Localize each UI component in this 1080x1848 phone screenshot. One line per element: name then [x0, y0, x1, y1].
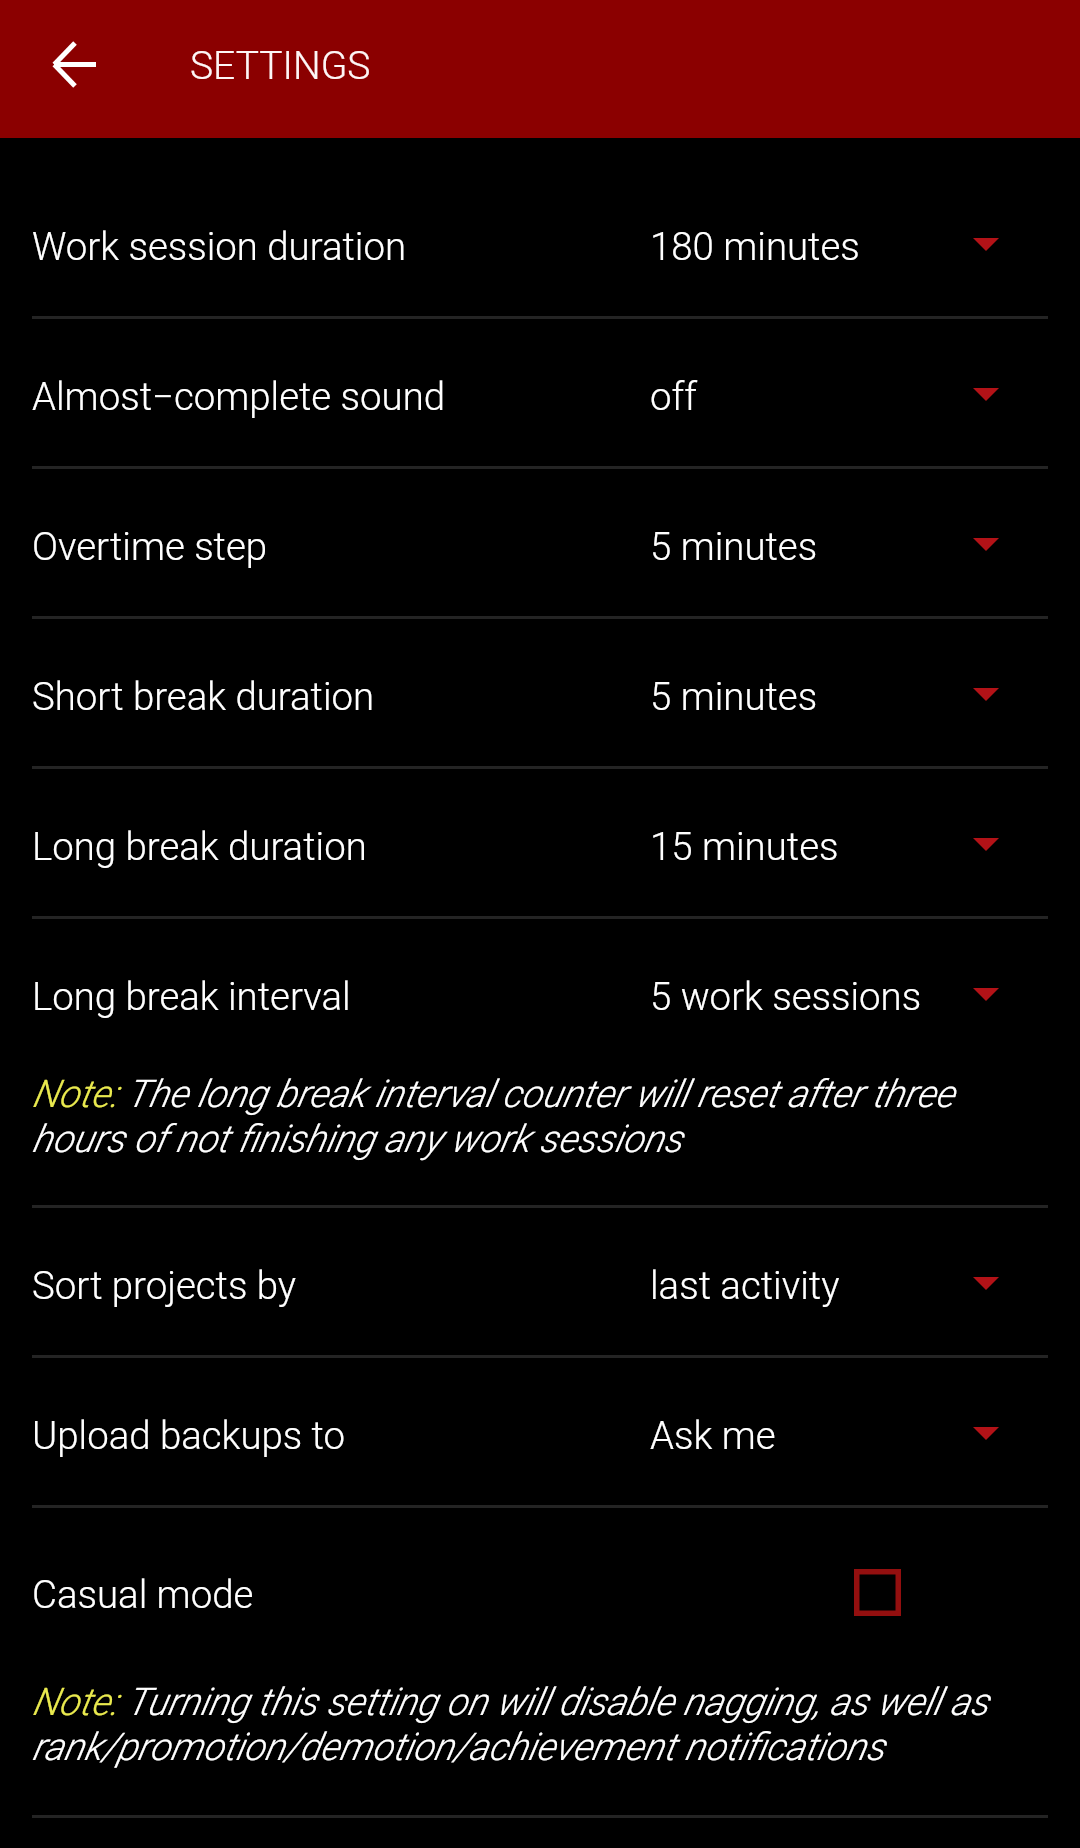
staticText: Note: The long break interval counter wi… — [32, 1072, 1048, 1161]
button[interactable]: Back — [6, 0, 144, 138]
staticText: off — [650, 374, 697, 419]
staticText: 180 minutes — [650, 224, 860, 269]
staticText: 5 minutes — [650, 674, 818, 719]
staticText: Work session duration — [32, 224, 407, 269]
staticText: 5 minutes — [650, 524, 818, 569]
button[interactable]: Long break interval — [0, 919, 1080, 1066]
staticText: Overtime step — [32, 524, 268, 569]
staticText: Casual mode — [32, 1572, 254, 1617]
button[interactable]: Overtime step — [0, 469, 1080, 616]
button[interactable]: Almost−complete sound — [0, 319, 1080, 466]
staticText: 15 minutes — [650, 824, 839, 869]
button[interactable]: Long break duration — [0, 769, 1080, 916]
staticText: Long break interval — [32, 974, 351, 1019]
staticText: Sort projects by — [32, 1263, 297, 1308]
button[interactable]: Short break duration — [0, 619, 1080, 766]
staticText: Long break duration — [32, 824, 367, 869]
staticText: Almost−complete sound — [32, 374, 446, 419]
button[interactable]: Casual mode — [0, 1508, 1080, 1676]
staticText: Note: Turning this setting on will disab… — [32, 1680, 1048, 1769]
button[interactable]: Upload backups to — [0, 1358, 1080, 1505]
button[interactable]: Sort projects by — [0, 1208, 1080, 1355]
button[interactable]: Work session duration — [0, 169, 1080, 316]
staticText: last activity — [650, 1263, 840, 1308]
staticText: Upload backups to — [32, 1413, 346, 1458]
staticText: SETTINGS — [190, 43, 371, 89]
staticText: Short break duration — [32, 674, 375, 719]
staticText: 5 work sessions — [650, 974, 922, 1019]
staticText: Ask me — [650, 1413, 776, 1458]
